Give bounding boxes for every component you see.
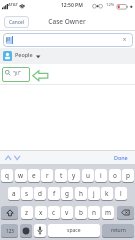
staticText: j	[93, 189, 95, 198]
staticText: d	[38, 189, 42, 198]
staticText: “jil”	[13, 70, 21, 77]
button[interactable]: l	[115, 187, 127, 200]
button[interactable]	[2, 67, 30, 82]
staticText: q	[5, 171, 9, 180]
button[interactable]: h	[75, 187, 87, 200]
staticText: o	[113, 171, 117, 180]
button[interactable]: v	[61, 206, 73, 219]
staticText: jil	[6, 36, 10, 43]
button[interactable]: y	[68, 169, 80, 182]
staticText: c	[52, 208, 56, 217]
button[interactable]: e	[28, 169, 40, 182]
staticText: k	[105, 189, 109, 198]
staticText: 12:50 PM	[61, 2, 83, 9]
button[interactable]: x	[35, 206, 47, 219]
staticText: m	[105, 208, 111, 217]
staticText: ×	[122, 35, 127, 45]
button[interactable]	[117, 206, 134, 219]
staticText: 123	[6, 228, 14, 234]
button[interactable]	[0, 48, 135, 64]
staticText: AT&T	[8, 2, 18, 8]
button[interactable]: s	[21, 187, 33, 200]
button[interactable]: k	[101, 187, 113, 200]
staticText: Cancel	[9, 19, 24, 26]
staticText: space	[67, 227, 81, 234]
button[interactable]: u	[82, 169, 94, 182]
button[interactable]	[3, 33, 133, 47]
button[interactable]: return	[102, 224, 134, 237]
staticText: h	[79, 189, 83, 198]
button[interactable]: c	[48, 206, 60, 219]
staticText: s	[25, 189, 29, 198]
staticText: y	[72, 171, 76, 180]
button[interactable]	[5, 155, 21, 161]
staticText: u	[86, 171, 90, 180]
button[interactable]: Done	[110, 151, 132, 163]
staticText: a	[12, 189, 16, 198]
button[interactable]: w	[15, 169, 27, 182]
staticText: w	[18, 171, 24, 180]
staticText: return	[111, 227, 126, 234]
button[interactable]: o	[109, 169, 121, 182]
button[interactable]: 123	[1, 224, 18, 237]
staticText: z	[25, 208, 29, 217]
button[interactable]: p	[122, 169, 134, 182]
staticText: r	[46, 171, 49, 180]
staticText: x	[39, 208, 43, 217]
staticText: v	[65, 208, 69, 217]
staticText: People	[15, 51, 33, 58]
button[interactable]	[34, 224, 46, 237]
button[interactable]: f	[48, 187, 60, 200]
button[interactable]: d	[34, 187, 46, 200]
button[interactable]: q	[1, 169, 13, 182]
button[interactable]	[20, 224, 32, 237]
button[interactable]: a	[8, 187, 20, 200]
button[interactable]	[1, 206, 18, 219]
staticText: 12%	[106, 2, 115, 8]
staticText: b	[79, 208, 83, 217]
staticText: n	[92, 208, 96, 217]
staticText: g	[65, 189, 69, 198]
button[interactable]: z	[21, 206, 33, 219]
button[interactable]: b	[75, 206, 87, 219]
staticText: p	[126, 171, 130, 180]
button[interactable]: n	[88, 206, 100, 219]
button[interactable]: space	[48, 224, 100, 237]
staticText: e	[32, 171, 36, 180]
button[interactable]: i	[95, 169, 107, 182]
staticText: Done	[114, 154, 128, 161]
staticText: l	[120, 189, 122, 198]
button[interactable]: m	[102, 206, 114, 219]
button[interactable]: g	[61, 187, 73, 200]
button[interactable]: j	[88, 187, 100, 200]
staticText: t	[60, 171, 63, 180]
button[interactable]: Cancel	[4, 16, 29, 28]
staticText: i	[100, 171, 102, 180]
staticText: f	[53, 189, 56, 198]
button[interactable]: t	[55, 169, 67, 182]
button[interactable]: r	[41, 169, 53, 182]
staticText: Case Owner	[48, 17, 86, 26]
